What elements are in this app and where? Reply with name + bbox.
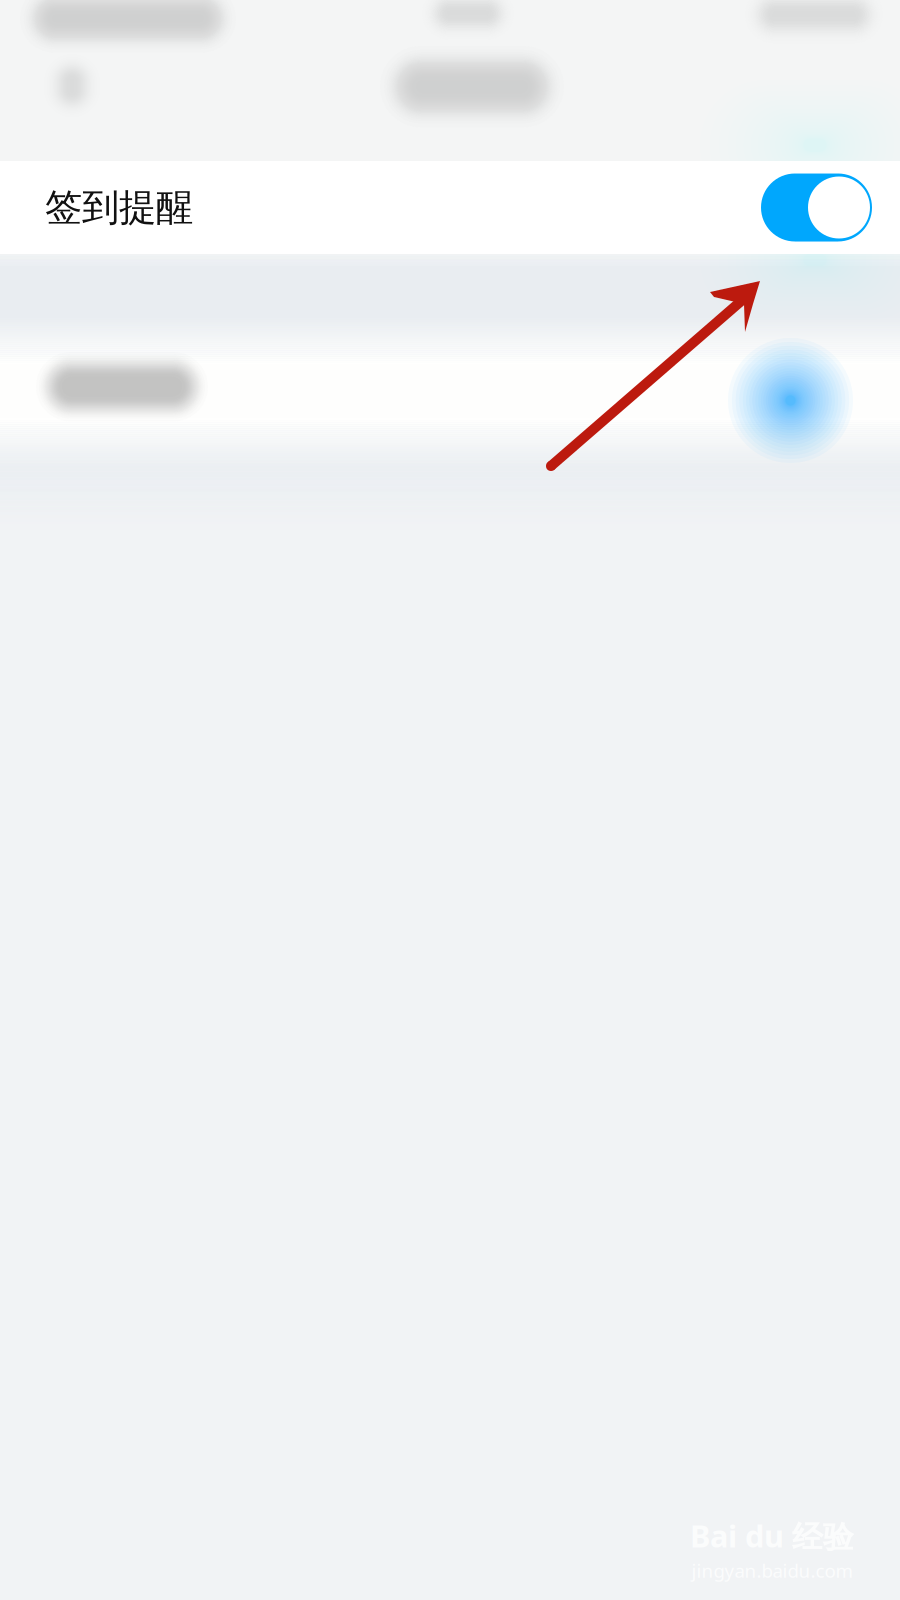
button[interactable]: 签到提醒 — [0, 161, 900, 254]
staticText: jingyan.baidu.com — [691, 1558, 852, 1583]
staticText: Bai du 经验 — [690, 1515, 854, 1556]
staticText: 签到提醒 — [45, 185, 193, 230]
